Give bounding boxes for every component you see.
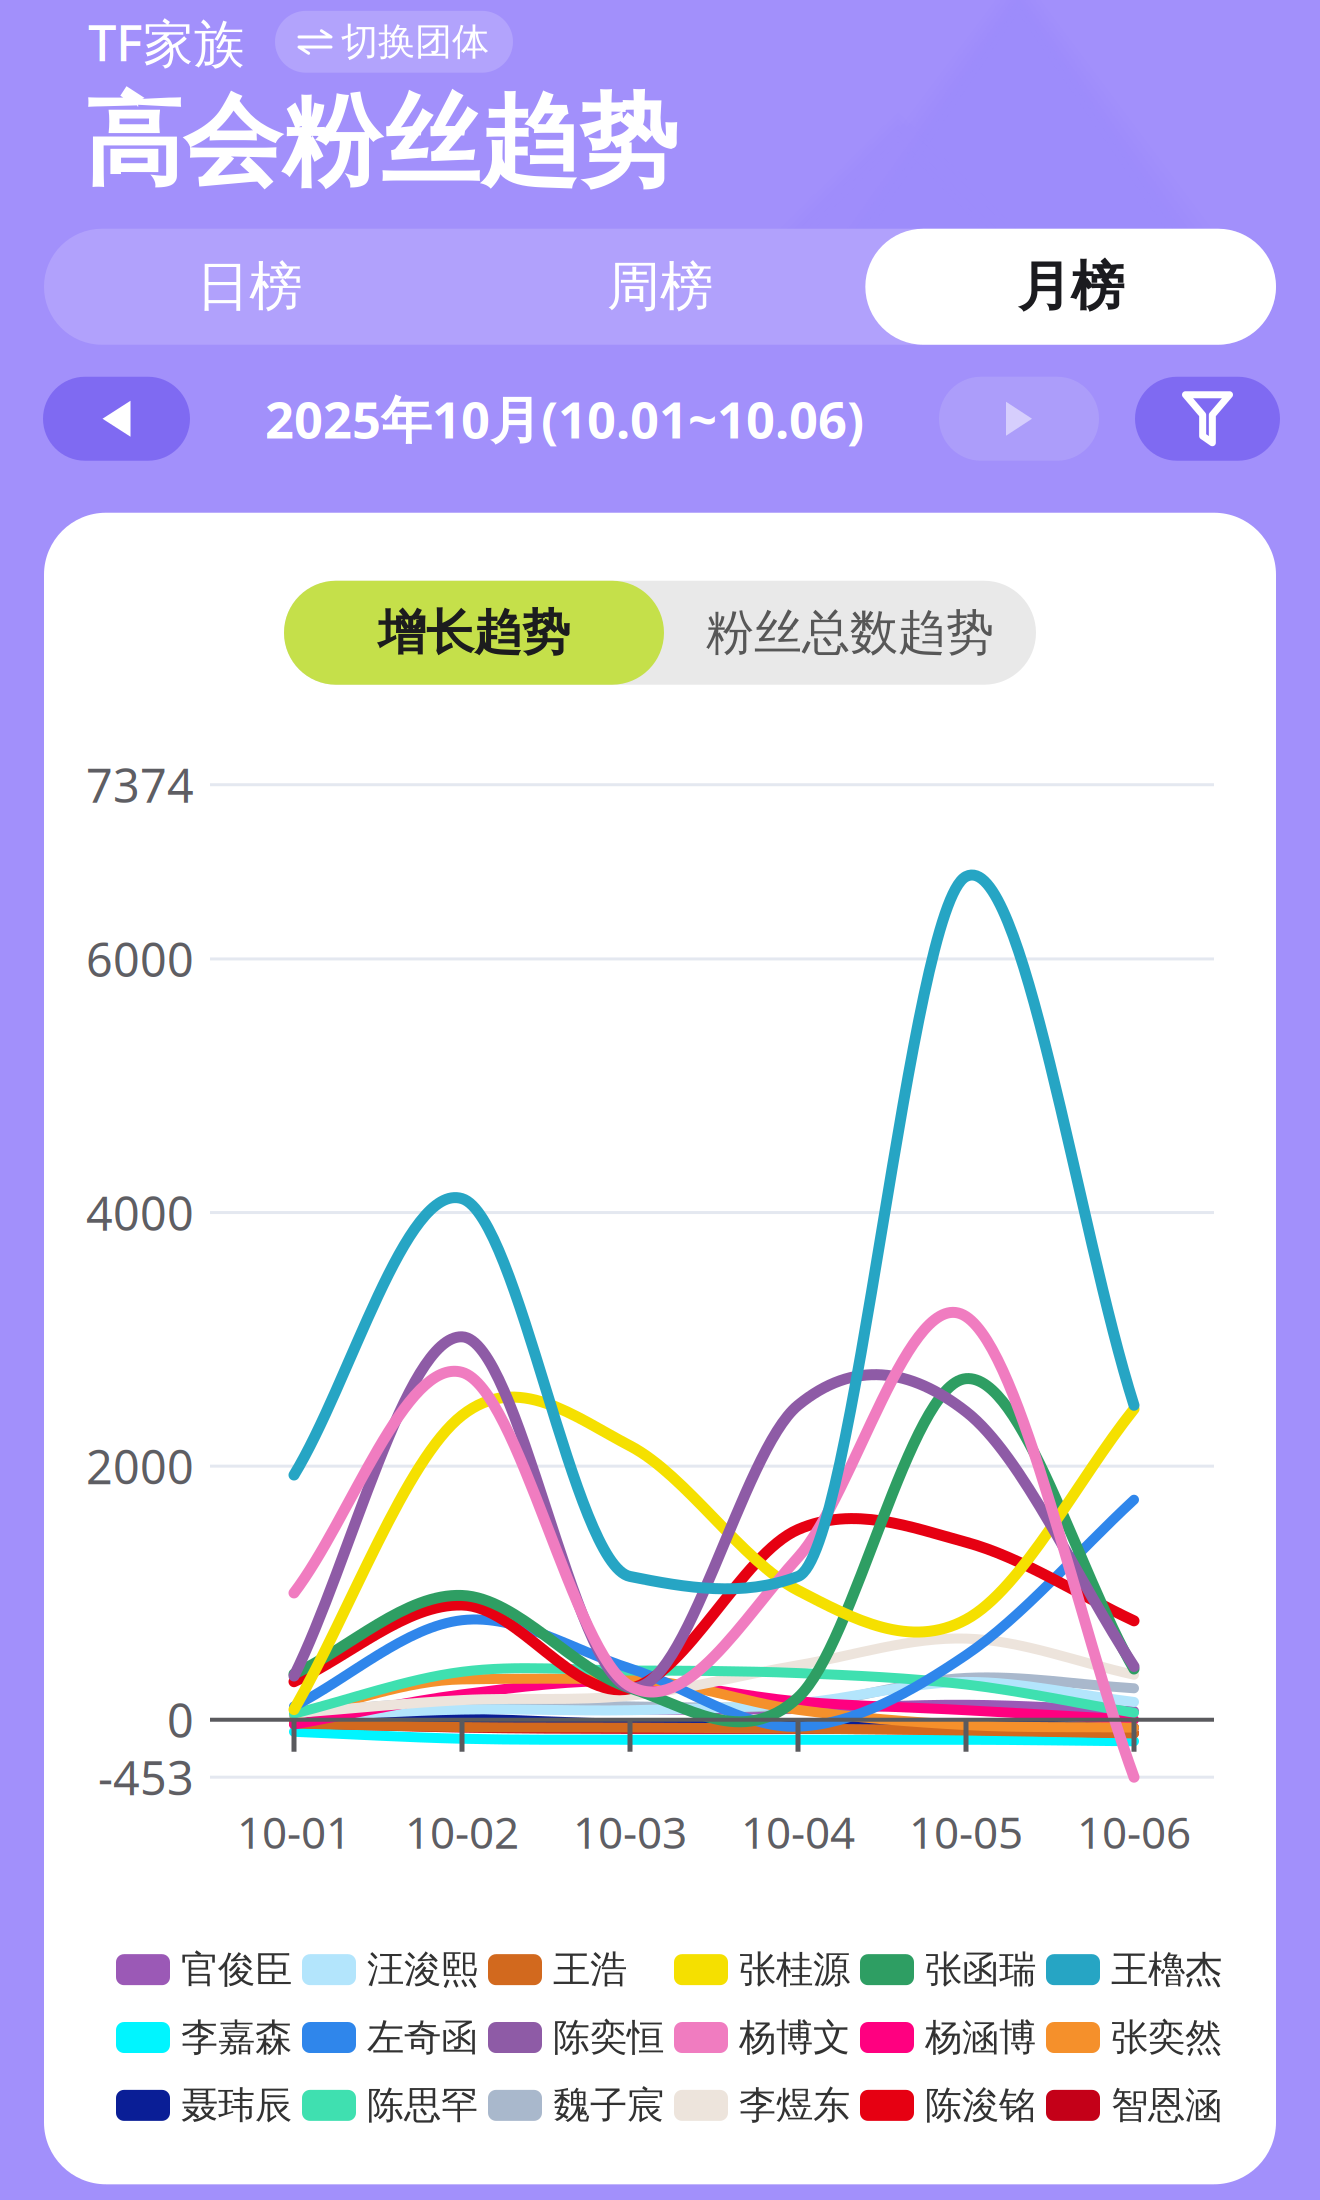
staticText: 魏子宸 [553, 2082, 664, 2128]
staticText: 月榜 [1018, 254, 1124, 319]
staticText: 10-02 [405, 1802, 519, 1861]
button[interactable]: 筛选 [1135, 377, 1280, 461]
staticText: 粉丝总数趋势 [706, 603, 994, 662]
staticText: 2025年10月(10.01~10.06) [265, 385, 864, 452]
staticText: 0 [167, 1689, 194, 1751]
staticText: 王櫓杰 [1111, 1947, 1222, 1993]
staticText: 汪浚熙 [367, 1947, 478, 1993]
staticText: 日榜 [196, 254, 302, 319]
staticText: 10-04 [741, 1802, 855, 1861]
staticText: 4000 [86, 1182, 194, 1244]
staticText: 智恩涵 [1111, 2082, 1222, 2128]
staticText: 张奕然 [1111, 2015, 1222, 2060]
staticText: 左奇函 [367, 2015, 478, 2060]
button[interactable]: 月榜 [865, 229, 1276, 345]
staticText: 张桂源 [739, 1947, 850, 1993]
button[interactable]: 粉丝总数趋势 [664, 581, 1036, 685]
button[interactable]: 下一个月 [939, 377, 1099, 461]
staticText: 10-05 [909, 1802, 1023, 1861]
staticText: 李煜东 [739, 2082, 850, 2128]
staticText: 杨涵博 [925, 2015, 1036, 2060]
staticText: 陈浚铭 [925, 2082, 1036, 2128]
staticText: 切换团体 [341, 19, 489, 65]
staticText: 增长趋势 [378, 603, 570, 662]
staticText: 陈奕恒 [553, 2015, 664, 2060]
staticText: 2000 [86, 1435, 194, 1497]
staticText: 陈思罕 [367, 2082, 478, 2128]
button[interactable]: 增长趋势 [284, 581, 664, 685]
staticText: 10-03 [573, 1802, 687, 1861]
staticText: 6000 [86, 928, 194, 990]
button[interactable]: 日榜 [44, 229, 455, 345]
staticText: 周榜 [607, 254, 713, 319]
button[interactable]: 周榜 [455, 229, 865, 345]
button[interactable]: 上一个月 [43, 377, 190, 461]
staticText: 官俊臣 [181, 1947, 292, 1993]
staticText: 张函瑞 [925, 1947, 1036, 1993]
staticText: TF家族 [88, 8, 245, 75]
staticText: 10-01 [237, 1802, 351, 1861]
button[interactable]: 切换团体 [275, 11, 513, 73]
staticText: 10-06 [1077, 1802, 1191, 1861]
staticText: 王浩 [553, 1947, 627, 1993]
staticText: 7374 [86, 754, 194, 816]
staticText: 高会粉丝趋势 [84, 81, 678, 203]
staticText: 杨博文 [739, 2015, 850, 2060]
staticText: 聂玮辰 [181, 2082, 292, 2128]
staticText: -453 [98, 1746, 194, 1808]
staticText: 李嘉森 [181, 2015, 292, 2060]
